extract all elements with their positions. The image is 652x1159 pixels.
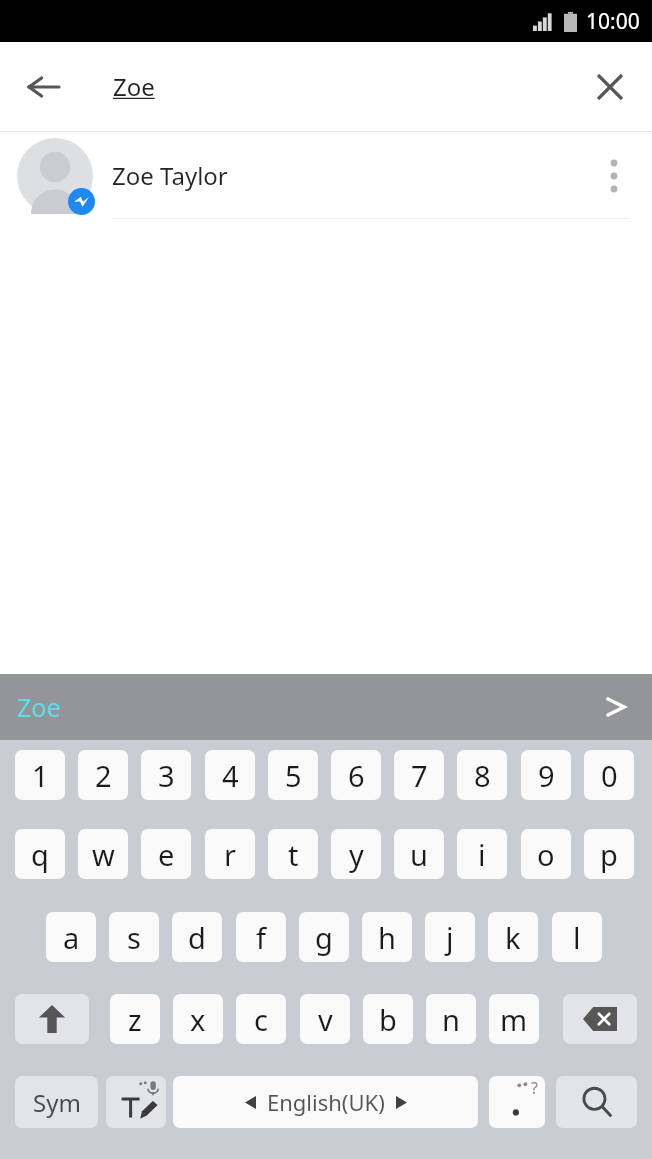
button[interactable]: u: [394, 829, 444, 879]
staticText: x: [190, 1000, 206, 1039]
staticText: m: [500, 1000, 528, 1039]
staticText: d: [188, 918, 206, 957]
staticText: v: [318, 1000, 333, 1039]
staticText: w: [92, 835, 115, 874]
button[interactable]: 3: [141, 750, 191, 800]
staticText: u: [410, 835, 428, 874]
button[interactable]: i: [457, 829, 507, 879]
button[interactable]: More suggestions: [594, 685, 638, 729]
staticText: 10:00: [586, 7, 640, 36]
button[interactable]: Zoe: [0, 674, 652, 740]
staticText: English(UK): [267, 1087, 385, 1117]
button[interactable]: Zoe Taylor: [0, 132, 652, 219]
button[interactable]: e: [141, 829, 191, 879]
button[interactable]: y: [331, 829, 381, 879]
staticText: Zoe Taylor: [112, 159, 228, 192]
staticText: b: [379, 1000, 397, 1039]
button[interactable]: w: [78, 829, 128, 879]
staticText: 5: [285, 756, 302, 795]
staticText: q: [31, 835, 49, 874]
button[interactable]: n: [426, 994, 476, 1044]
staticText: 1: [32, 756, 49, 795]
staticText: o: [537, 835, 555, 874]
button[interactable]: m: [489, 994, 539, 1044]
button[interactable]: 4: [205, 750, 255, 800]
button[interactable]: s: [109, 912, 159, 962]
button[interactable]: l: [552, 912, 602, 962]
button[interactable]: k: [488, 912, 538, 962]
button[interactable]: o: [521, 829, 571, 879]
button[interactable]: 5: [268, 750, 318, 800]
staticText: ?: [531, 1077, 538, 1099]
button[interactable]: r: [205, 829, 255, 879]
staticText: h: [378, 918, 396, 957]
staticText: k: [505, 918, 521, 957]
button[interactable]: p: [584, 829, 634, 879]
staticText: Zoe: [113, 70, 155, 103]
staticText: p: [600, 835, 618, 874]
button[interactable]: 7: [394, 750, 444, 800]
staticText: s: [127, 918, 141, 957]
staticText: z: [128, 1000, 142, 1039]
button[interactable]: Period: [489, 1076, 545, 1128]
button[interactable]: 2: [78, 750, 128, 800]
staticText: 4: [222, 756, 239, 795]
staticText: 8: [474, 756, 491, 795]
button[interactable]: Search: [556, 1076, 637, 1128]
button[interactable]: b: [363, 994, 413, 1044]
staticText: Sym: [33, 1086, 81, 1119]
button[interactable]: a: [46, 912, 96, 962]
staticText: g: [315, 918, 333, 957]
staticText: l: [573, 918, 581, 957]
staticText: e: [158, 835, 175, 874]
button[interactable]: 9: [521, 750, 571, 800]
button[interactable]: Handwriting and voice input: [106, 1076, 166, 1128]
button[interactable]: j: [425, 912, 475, 962]
button[interactable]: 6: [331, 750, 381, 800]
staticText: f: [256, 918, 266, 957]
staticText: n: [442, 1000, 460, 1039]
staticText: 3: [158, 756, 175, 795]
staticText: y: [349, 835, 364, 874]
staticText: 6: [348, 756, 365, 795]
button[interactable]: x: [173, 994, 223, 1044]
button[interactable]: q: [15, 829, 65, 879]
button[interactable]: English(UK): [173, 1076, 478, 1128]
staticText: c: [254, 1000, 268, 1039]
button[interactable]: 0: [584, 750, 634, 800]
staticText: r: [224, 835, 236, 874]
button[interactable]: 8: [457, 750, 507, 800]
button[interactable]: f: [236, 912, 286, 962]
button[interactable]: d: [172, 912, 222, 962]
staticText: 9: [538, 756, 555, 795]
button[interactable]: z: [110, 994, 160, 1044]
staticText: Zoe: [17, 690, 61, 724]
button[interactable]: Sym: [15, 1076, 98, 1128]
staticText: 2: [95, 756, 112, 795]
button[interactable]: Shift: [15, 994, 89, 1044]
button[interactable]: More options: [588, 150, 640, 202]
button[interactable]: Back: [18, 61, 70, 113]
button[interactable]: Clear search: [582, 59, 638, 115]
staticText: j: [446, 918, 454, 957]
staticText: 0: [601, 756, 618, 795]
button[interactable]: Backspace: [563, 994, 637, 1044]
staticText: 7: [411, 756, 428, 795]
button[interactable]: c: [236, 994, 286, 1044]
button[interactable]: 1: [15, 750, 65, 800]
button[interactable]: h: [362, 912, 412, 962]
staticText: a: [63, 918, 80, 957]
button[interactable]: v: [300, 994, 350, 1044]
button[interactable]: g: [299, 912, 349, 962]
staticText: t: [288, 835, 299, 874]
staticText: i: [478, 835, 486, 874]
button[interactable]: t: [268, 829, 318, 879]
